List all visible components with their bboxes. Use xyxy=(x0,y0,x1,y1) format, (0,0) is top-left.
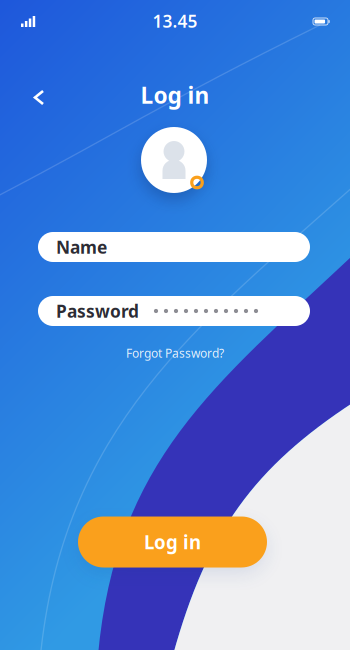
staticText: Password xyxy=(56,299,139,322)
staticText: Log in xyxy=(144,530,201,554)
button[interactable]: Change profile photo xyxy=(134,120,214,200)
button[interactable]: Name xyxy=(38,232,310,262)
staticText: Log in xyxy=(140,80,209,110)
staticText: Name xyxy=(56,235,107,258)
button[interactable]: Password xyxy=(38,296,310,326)
button[interactable]: Back xyxy=(24,77,54,112)
button[interactable]: Forgot Password? xyxy=(118,341,232,365)
staticText: Forgot Password? xyxy=(126,345,224,361)
button[interactable]: Log in xyxy=(78,516,267,567)
staticText: 13.45 xyxy=(152,9,197,32)
